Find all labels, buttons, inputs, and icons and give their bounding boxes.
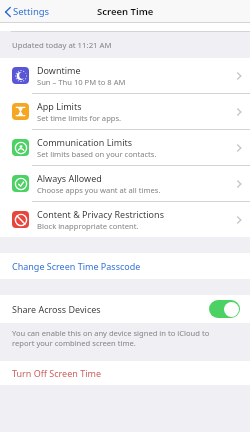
button[interactable]: Share Across Devices toggle xyxy=(209,300,240,318)
staticText: Set time limits for apps. xyxy=(37,113,122,123)
button[interactable]: Communication Limits xyxy=(0,130,250,165)
button[interactable]: Content & Privacy Restrictions xyxy=(0,202,250,237)
staticText: Settings xyxy=(13,5,50,18)
staticText: App Limits xyxy=(37,100,82,112)
staticText: Share Across Devices xyxy=(12,303,101,315)
staticText: Choose apps you want at all times. xyxy=(37,185,161,195)
staticText: Block inappropriate content. xyxy=(37,221,139,231)
button[interactable]: App Limits xyxy=(0,94,250,129)
button[interactable]: Settings xyxy=(0,3,56,20)
staticText: Always Allowed xyxy=(37,172,102,184)
button[interactable]: Turn Off Screen Time xyxy=(0,361,250,385)
staticText: You can enable this on any device signed… xyxy=(12,328,232,348)
button[interactable]: Change Screen Time Passcode xyxy=(0,253,250,279)
staticText: Sun – Thu 10 PM to 8 AM xyxy=(37,77,126,87)
button[interactable]: Always Allowed xyxy=(0,166,250,201)
button[interactable]: Share Across Devices xyxy=(0,295,250,323)
staticText: Screen Time xyxy=(97,5,154,18)
staticText: Updated today at 11:21 AM xyxy=(12,40,112,51)
staticText: Turn Off Screen Time xyxy=(12,367,101,379)
staticText: Set limits based on your contacts. xyxy=(37,149,157,159)
staticText: Downtime xyxy=(37,64,81,76)
staticText: Change Screen Time Passcode xyxy=(12,260,141,272)
staticText: Content & Privacy Restrictions xyxy=(37,208,164,220)
button[interactable]: Downtime xyxy=(0,58,250,93)
staticText: Communication Limits xyxy=(37,136,133,148)
